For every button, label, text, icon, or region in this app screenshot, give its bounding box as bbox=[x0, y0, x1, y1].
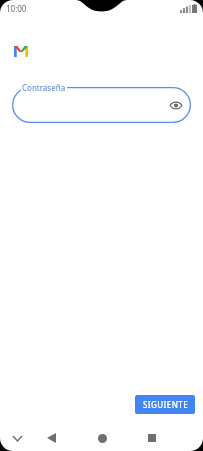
button[interactable]: Atrás bbox=[40, 427, 62, 449]
button[interactable]: Inicio bbox=[91, 427, 113, 449]
staticText: 10:00 bbox=[6, 3, 27, 14]
button[interactable]: Mostrar contraseña bbox=[166, 95, 186, 115]
staticText: SIGUIENTE bbox=[143, 399, 188, 410]
button[interactable]: Mostrar contraseña bbox=[12, 87, 191, 123]
button[interactable]: SIGUIENTE bbox=[135, 395, 195, 414]
button[interactable]: Recientes bbox=[141, 427, 163, 449]
button[interactable]: Ocultar teclado bbox=[7, 428, 27, 448]
staticText: Contraseña bbox=[22, 82, 66, 93]
